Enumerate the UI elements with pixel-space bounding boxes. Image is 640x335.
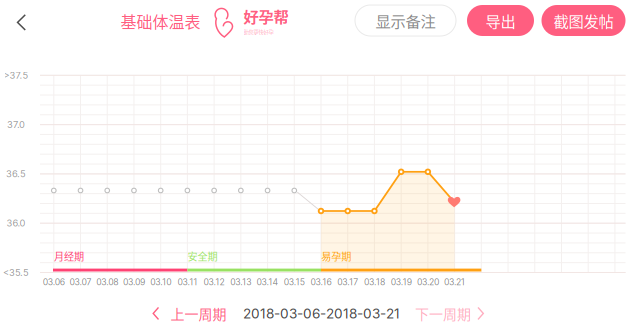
staticText: 03.17 (337, 277, 358, 287)
staticText: 03.13 (230, 277, 251, 287)
staticText: 基础体温表 (120, 9, 200, 33)
button[interactable]: 显示备注 (355, 5, 456, 36)
staticText: 助您更快好孕 (243, 28, 273, 36)
staticText: 36.0 (6, 218, 25, 229)
staticText: 下一周期 (415, 303, 471, 324)
staticText: 37.0 (7, 119, 25, 130)
button[interactable]: 截图发帖 (541, 5, 625, 36)
staticText: 03.09 (123, 277, 145, 287)
staticText: 03.08 (96, 277, 118, 287)
staticText: <35.5 (3, 267, 29, 278)
staticText: 月经期 (54, 249, 84, 264)
button[interactable]: Back (0, 0, 43, 44)
staticText: 03.10 (150, 277, 171, 287)
staticText: 好孕帮 (243, 5, 288, 27)
staticText: 导出 (485, 9, 515, 32)
staticText: 上一周期 (170, 303, 226, 324)
staticText: 03.06 (43, 277, 65, 287)
staticText: 2018-03-06-2018-03-21 (243, 305, 400, 322)
staticText: 03.19 (391, 277, 412, 287)
staticText: 安全期 (188, 249, 218, 264)
button[interactable]: 导出 (467, 5, 534, 36)
staticText: 03.16 (310, 277, 331, 287)
staticText: 03.15 (284, 277, 305, 287)
staticText: 03.18 (364, 277, 385, 287)
staticText: 03.07 (69, 277, 91, 287)
staticText: 易孕期 (321, 249, 351, 264)
staticText: 36.5 (6, 168, 26, 180)
staticText: 03.12 (204, 277, 225, 287)
staticText: 03.20 (417, 277, 439, 287)
button[interactable]: 下一周期 (407, 295, 492, 332)
staticText: 03.14 (257, 277, 279, 287)
staticText: 显示备注 (375, 9, 435, 32)
button[interactable]: 上一周期 (144, 295, 234, 332)
staticText: 03.21 (444, 277, 465, 287)
staticText: 03.11 (177, 277, 197, 287)
staticText: >37.5 (3, 70, 28, 81)
staticText: 截图发帖 (553, 9, 613, 32)
